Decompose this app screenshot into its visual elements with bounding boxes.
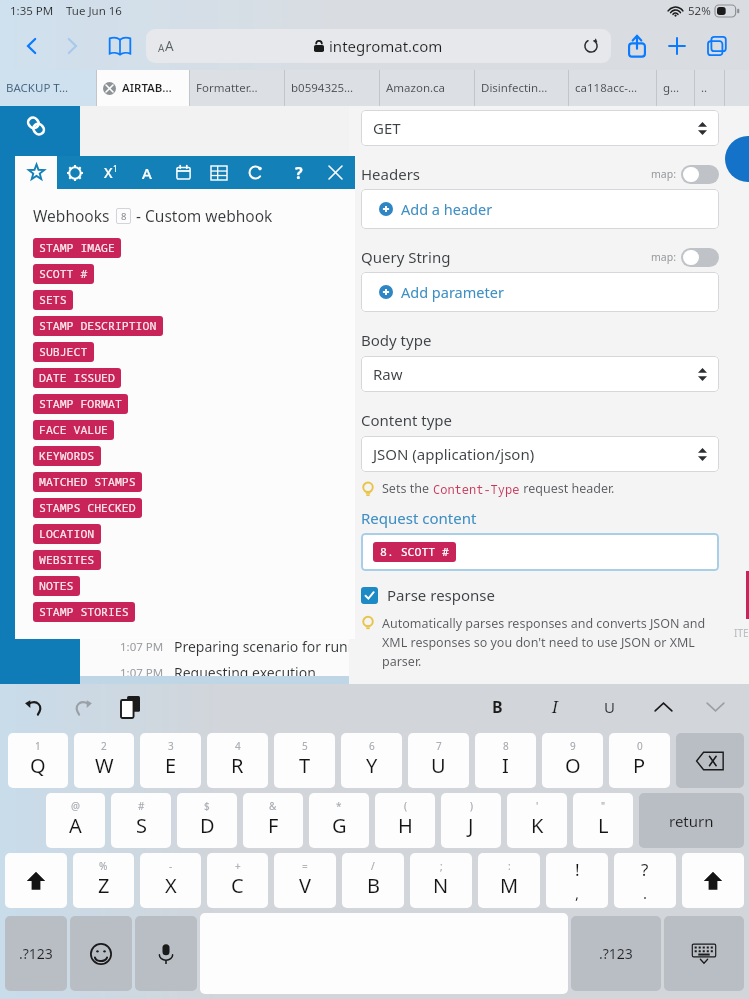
button[interactable]: ' [507,793,567,848]
button[interactable]: Dictation [135,916,197,991]
button[interactable]: STAMP FORMAT [33,394,128,414]
button[interactable]: Formatter… [190,70,285,106]
button[interactable]: SETS [33,290,73,310]
button[interactable]: & [243,793,303,848]
button[interactable]: SUBJECT [33,342,94,362]
button[interactable]: DATE ISSUED [33,368,121,388]
button[interactable]: Connections [24,114,48,138]
button[interactable]: JSON (application/json) [361,436,719,472]
button[interactable]: = [274,853,336,908]
button[interactable]: Amazon.ca [380,70,475,106]
button[interactable]: KEYWORDS [33,446,101,466]
button[interactable]: " [573,793,633,848]
button[interactable]: WEBSITES [33,550,101,570]
button[interactable]: Return [639,793,744,848]
button[interactable]: # [111,793,171,848]
button[interactable]: 6 [341,733,402,788]
button[interactable]: Settings [380,562,414,596]
button[interactable]: .. [695,70,725,106]
button[interactable]: Bookmarks [100,26,140,66]
button[interactable]: Numbers [5,916,67,991]
button[interactable]: Shift [5,853,67,908]
button[interactable]: 3 [140,733,201,788]
button[interactable]: % [73,853,134,908]
button[interactable]: New tab [657,26,697,66]
button[interactable]: Text [129,156,165,189]
button[interactable]: Paste [114,691,146,723]
button[interactable]: Undo [18,691,50,723]
button[interactable]: : [478,853,540,908]
button[interactable]: SCOTT # [33,264,94,284]
button[interactable]: Show all tabs [697,26,737,66]
button[interactable]: Previous [647,691,679,723]
button[interactable]: ? [614,853,676,908]
button[interactable]: 4 [207,733,268,788]
button[interactable]: ca118acc-… [569,70,657,106]
button[interactable]: 8 [475,733,536,788]
button[interactable]: Add parameter [361,272,719,312]
button[interactable]: Table [201,156,237,189]
button[interactable]: Parse response [361,585,495,605]
button[interactable]: Hide keyboard [664,916,744,991]
button[interactable]: $ [177,793,237,848]
button[interactable]: Favorites [15,156,57,189]
button[interactable]: Emoji [70,916,132,991]
button[interactable]: 0 [609,733,670,788]
button[interactable]: ; [410,853,472,908]
button[interactable]: ) [441,793,501,848]
button[interactable]: Back [12,26,52,66]
button[interactable]: AIRTAB… [97,70,190,106]
button[interactable]: Raw [361,356,719,392]
button[interactable]: * [309,793,369,848]
button[interactable]: 8. SCOTT # [361,533,719,571]
button[interactable]: STAMP IMAGE [33,238,121,258]
button[interactable]: Disinfectin… [475,70,569,106]
button[interactable]: - [140,853,201,908]
button[interactable]: Backspace [676,733,744,788]
button[interactable]: Underline [593,691,625,723]
button[interactable]: STAMP DESCRIPTION [33,316,163,336]
button[interactable]: Numbers [571,916,661,991]
button[interactable]: 7 [408,733,469,788]
button[interactable]: Superscript [93,156,129,189]
button[interactable]: GET [361,110,719,146]
button[interactable]: Close [317,156,353,189]
button[interactable]: Italic [539,691,571,723]
button[interactable]: 9 [542,733,603,788]
button[interactable]: A [146,29,611,63]
button[interactable]: 2 [74,733,134,788]
button[interactable]: NOTES [33,576,80,596]
button[interactable]: 5 [274,733,335,788]
button[interactable]: FACE VALUE [33,420,114,440]
button[interactable]: g… [657,70,695,106]
button[interactable]: 1 [8,733,68,788]
button[interactable]: MATCHED STAMPS [33,472,142,492]
button[interactable]: Date [165,156,201,189]
button[interactable]: Help [281,156,317,189]
button[interactable]: Settings [57,156,93,189]
button[interactable]: Redo [66,691,98,723]
button[interactable]: STAMP STORIES [33,602,135,622]
button[interactable]: ( [375,793,435,848]
button[interactable]: Shift [682,853,744,908]
button[interactable]: BACKUP T… [0,70,97,106]
button[interactable]: / [342,853,404,908]
button[interactable]: Toggle map [681,248,719,267]
button[interactable]: STAMPS CHECKED [33,498,142,518]
button[interactable]: Flow [237,156,273,189]
button[interactable]: Bold [481,691,513,723]
button[interactable]: LOCATION [33,524,101,544]
button[interactable]: @ [46,793,105,848]
button[interactable]: + [207,853,268,908]
button[interactable]: Forward [52,26,92,66]
button[interactable]: Next [699,691,731,723]
button[interactable]: Share [617,26,657,66]
button[interactable]: b0594325… [285,70,380,106]
button[interactable]: Toggle map [681,165,719,184]
button[interactable]: ! [546,853,608,908]
